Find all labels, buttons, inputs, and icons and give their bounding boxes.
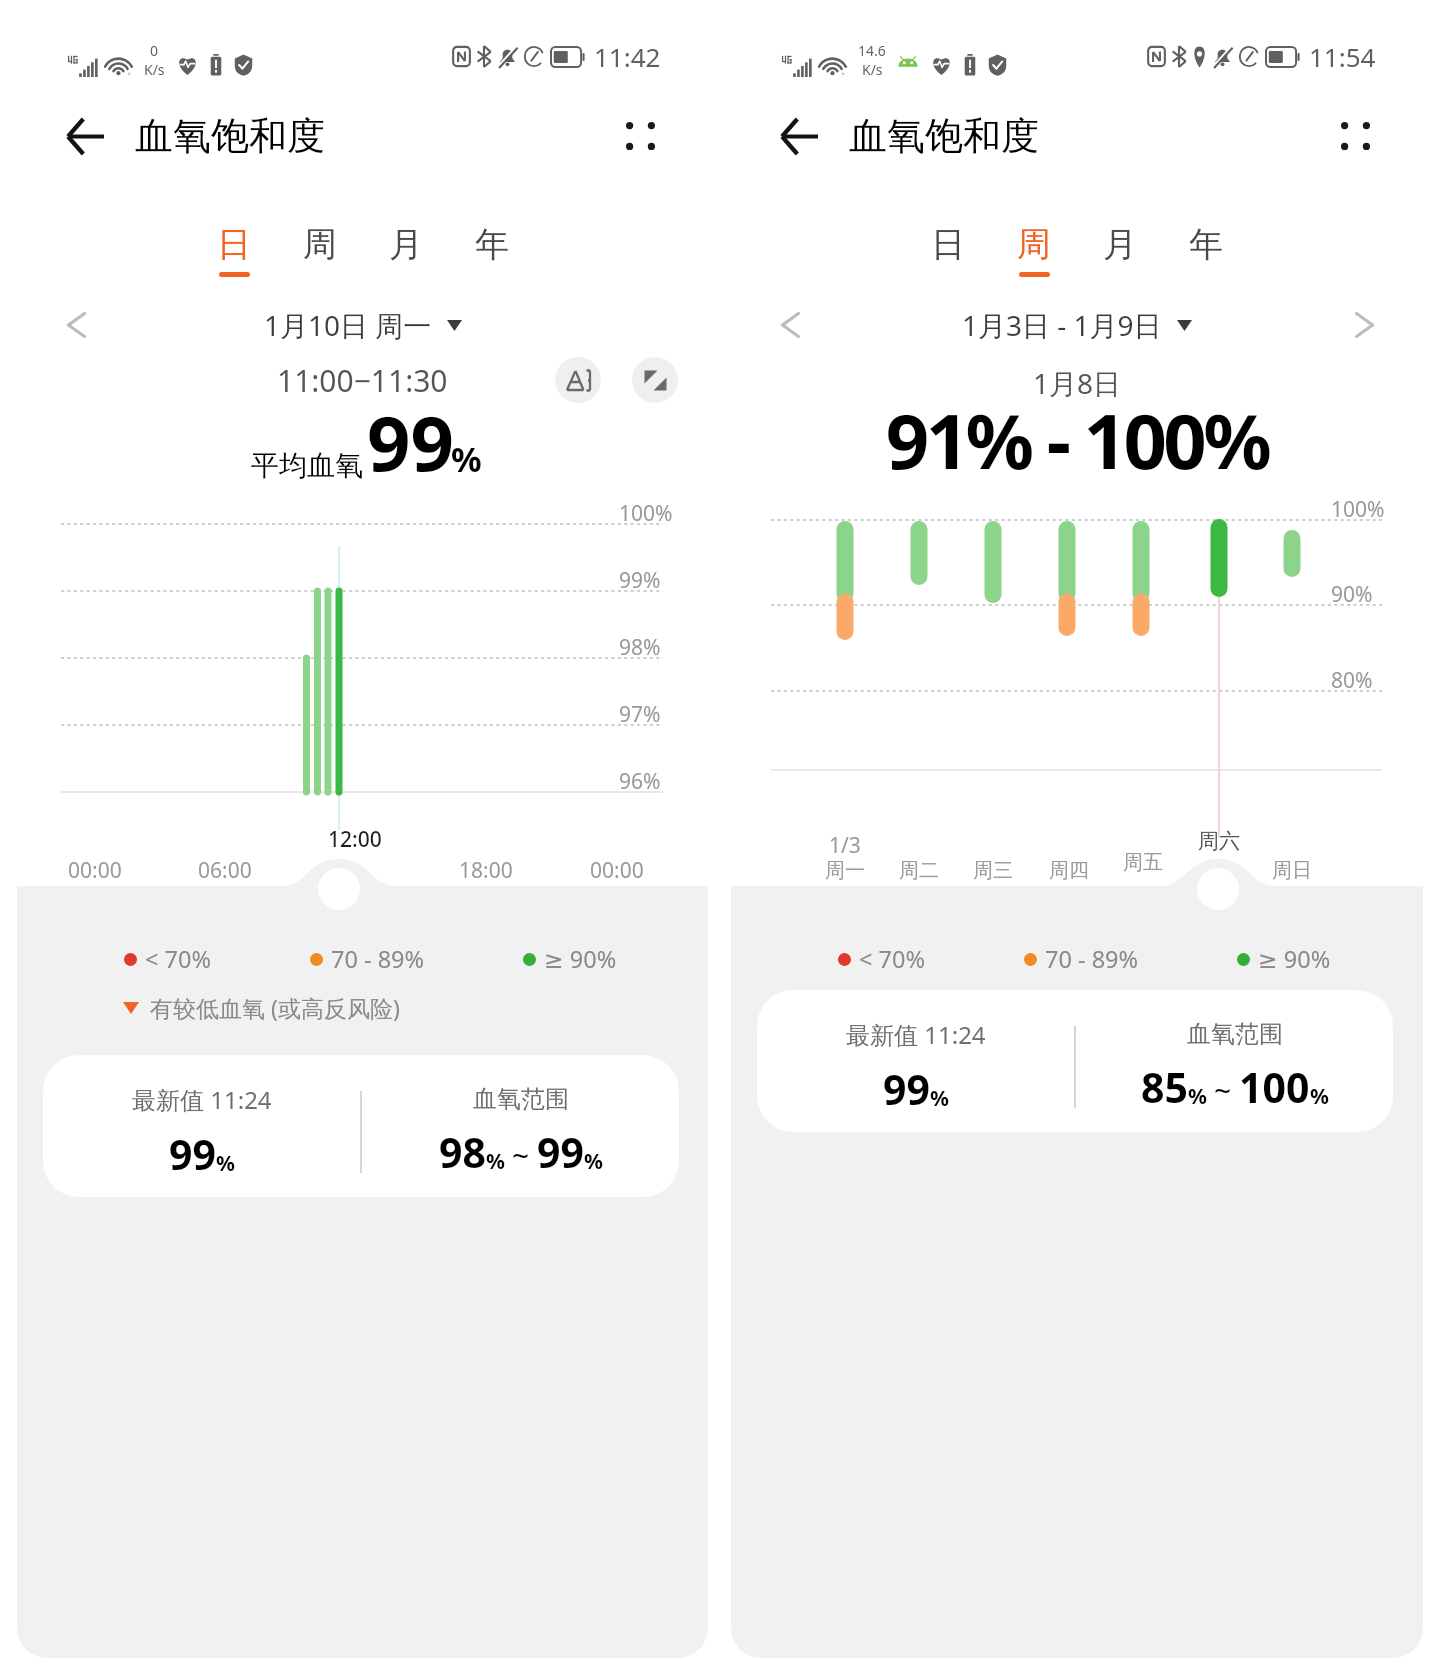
button[interactable]: 月: [1077, 223, 1163, 277]
staticText: 周一: [825, 858, 865, 883]
staticText: 100: [1239, 1059, 1310, 1115]
staticText: K/s: [144, 60, 165, 79]
staticText: 周三: [973, 858, 1013, 883]
staticText: 1月10日 周一: [264, 306, 432, 344]
staticText: %: [486, 1147, 505, 1176]
staticText: 18:00: [459, 856, 513, 884]
staticText: 最新值 11:24: [846, 1018, 986, 1051]
button[interactable]: 1月3日 - 1月9日: [962, 306, 1192, 344]
staticText: 月: [389, 223, 423, 266]
button[interactable]: Back: [773, 110, 825, 162]
staticText: 00:00: [590, 856, 644, 884]
button[interactable]: 有较低血氧 (或高反风险): [123, 992, 400, 1023]
staticText: 99: [883, 1061, 930, 1117]
staticText: 85: [1141, 1059, 1188, 1115]
staticText: 平均血氧: [251, 448, 363, 483]
staticText: 98: [439, 1124, 486, 1180]
button[interactable]: 年: [449, 223, 535, 277]
button[interactable]: 日: [191, 223, 277, 277]
staticText: 11:54: [1309, 39, 1376, 74]
button[interactable]: 周: [277, 223, 363, 277]
button[interactable]: More options: [1325, 106, 1385, 166]
staticText: 1月3日 - 1月9日: [962, 306, 1162, 344]
button[interactable]: 最新值 11:24: [43, 1055, 679, 1197]
staticText: 98%: [619, 633, 661, 661]
button[interactable]: 周: [991, 223, 1077, 277]
button[interactable]: AI summary: [555, 357, 601, 403]
button[interactable]: < 70%: [124, 943, 211, 975]
button[interactable]: Next week: [1333, 295, 1395, 355]
button[interactable]: < 70%: [838, 943, 925, 975]
staticText: %: [584, 1147, 603, 1176]
button[interactable]: Previous week: [45, 295, 107, 355]
button[interactable]: 最新值 11:24: [757, 990, 1393, 1132]
staticText: 周: [303, 223, 337, 266]
button[interactable]: More options: [610, 106, 670, 166]
staticText: 70 - 89%: [1045, 943, 1139, 975]
staticText: 00:00: [68, 856, 122, 884]
staticText: 血氧饱和度: [849, 112, 1039, 160]
button[interactable]: Expand chart: [632, 357, 678, 403]
button[interactable]: 年: [1163, 223, 1249, 277]
staticText: 70 - 89%: [331, 943, 425, 975]
staticText: 99%: [619, 566, 661, 594]
staticText: 0: [150, 41, 159, 60]
staticText: 血氧饱和度: [135, 112, 325, 160]
staticText: 周: [1017, 223, 1051, 266]
staticText: %: [451, 436, 482, 482]
staticText: 周六: [1198, 828, 1240, 854]
staticText: 1/3: [829, 831, 861, 859]
staticText: 96%: [619, 767, 661, 795]
staticText: < 70%: [859, 943, 925, 975]
staticText: 血氧范围: [473, 1084, 569, 1114]
staticText: 11:42: [594, 39, 661, 74]
button[interactable]: 70 - 89%: [310, 943, 425, 975]
staticText: 97%: [619, 700, 661, 728]
staticText: < 70%: [145, 943, 211, 975]
staticText: 有较低血氧 (或高反风险): [150, 992, 400, 1023]
staticText: %: [1310, 1082, 1329, 1111]
staticText: %: [216, 1149, 235, 1178]
staticText: 99: [367, 390, 454, 494]
staticText: 1月8日: [731, 364, 1423, 402]
staticText: 80%: [1331, 666, 1373, 694]
staticText: ≥ 90%: [1258, 943, 1331, 975]
staticText: 06:00: [198, 856, 252, 884]
staticText: ≥ 90%: [544, 943, 617, 975]
button[interactable]: 1月10日 周一: [264, 306, 462, 344]
staticText: 12:00: [328, 825, 382, 853]
staticText: 99: [537, 1124, 584, 1180]
button[interactable]: 70 - 89%: [1024, 943, 1139, 975]
staticText: 14.6: [858, 41, 886, 60]
staticText: 年: [475, 223, 509, 266]
button[interactable]: ≥ 90%: [523, 943, 617, 975]
staticText: ~: [512, 1135, 530, 1176]
staticText: 日: [931, 223, 965, 266]
button[interactable]: Previous week: [759, 295, 821, 355]
button[interactable]: 日: [905, 223, 991, 277]
staticText: 月: [1103, 223, 1137, 266]
staticText: %: [930, 1084, 949, 1113]
staticText: 91% - 100%: [731, 388, 1423, 492]
staticText: 11:00−11:30: [277, 360, 448, 401]
button[interactable]: Back: [59, 110, 111, 162]
staticText: 年: [1189, 223, 1223, 266]
staticText: 周五: [1123, 850, 1163, 875]
staticText: 周二: [899, 858, 939, 883]
button[interactable]: ≥ 90%: [1237, 943, 1331, 975]
staticText: 100%: [1331, 495, 1385, 523]
staticText: ~: [1214, 1070, 1232, 1111]
staticText: 血氧范围: [1187, 1019, 1283, 1049]
staticText: 100%: [619, 499, 673, 527]
button[interactable]: 月: [363, 223, 449, 277]
staticText: 周四: [1049, 858, 1089, 883]
staticText: 90%: [1331, 580, 1373, 608]
staticText: 日: [217, 223, 251, 266]
staticText: 周日: [1272, 858, 1312, 883]
staticText: K/s: [862, 60, 883, 79]
staticText: 最新值 11:24: [132, 1083, 272, 1116]
staticText: 99: [169, 1126, 216, 1182]
staticText: %: [1188, 1082, 1207, 1111]
